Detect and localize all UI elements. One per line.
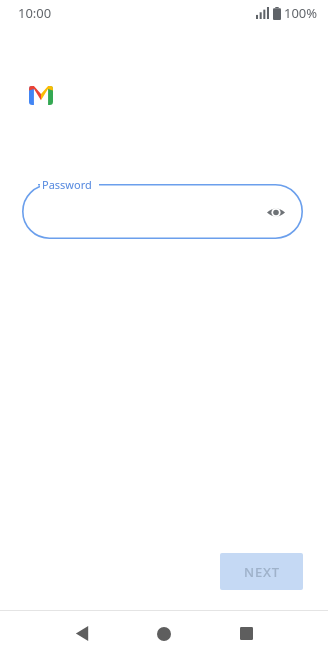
staticText: 10:00 [18, 4, 52, 22]
button[interactable]: Recent apps [222, 611, 270, 656]
staticText: 100% [284, 4, 318, 22]
button[interactable]: Home [140, 611, 188, 656]
staticText: Password [42, 177, 92, 192]
button[interactable]: Back [58, 611, 106, 656]
button[interactable]: NEXT [220, 553, 303, 590]
staticText: NEXT [244, 563, 280, 581]
button[interactable]: Show password [261, 197, 291, 227]
button[interactable]: Password [22, 184, 303, 239]
